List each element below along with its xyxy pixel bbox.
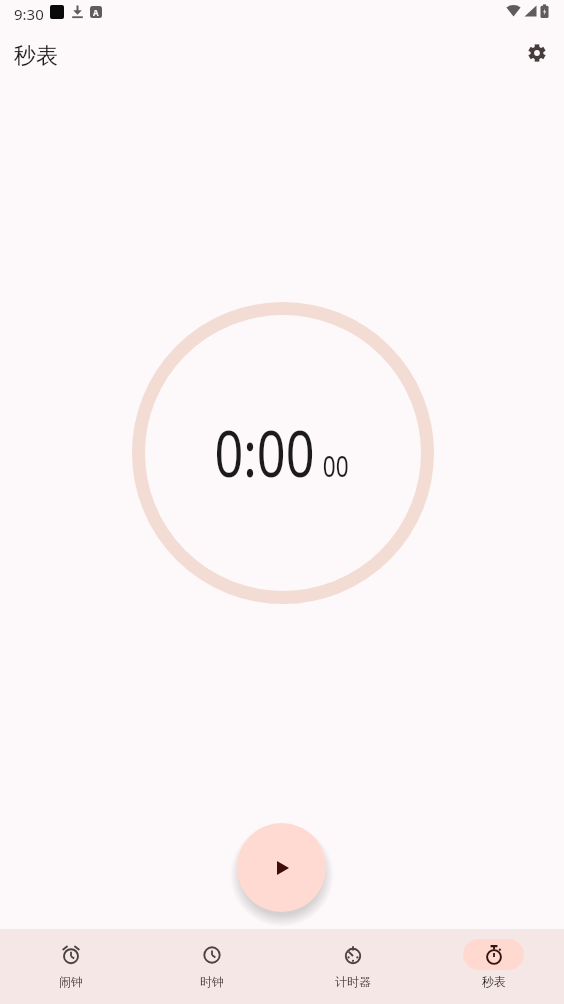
button[interactable] bbox=[525, 41, 549, 65]
staticText: 9:30 bbox=[14, 4, 44, 24]
button[interactable]: 时钟 bbox=[141, 929, 282, 1004]
staticText: 秒表 bbox=[14, 42, 58, 70]
staticText: 计时器 bbox=[335, 974, 371, 989]
staticText: 00 bbox=[323, 446, 349, 485]
button[interactable]: 秒表 bbox=[423, 929, 564, 1004]
staticText: 秒表 bbox=[482, 974, 506, 989]
button[interactable]: 闹钟 bbox=[0, 929, 141, 1004]
staticText: 时钟 bbox=[200, 974, 224, 989]
button[interactable]: 计时器 bbox=[282, 929, 423, 1004]
staticText: A bbox=[93, 7, 99, 18]
button[interactable] bbox=[237, 823, 326, 912]
staticText: 0:00 bbox=[214, 410, 314, 496]
staticText: 闹钟 bbox=[59, 974, 83, 989]
